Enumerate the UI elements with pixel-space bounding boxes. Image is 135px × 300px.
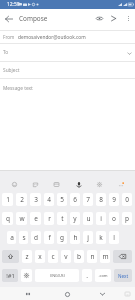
button[interactable]: g	[57, 231, 67, 244]
staticText: .com	[98, 273, 108, 278]
button[interactable]: 3	[30, 193, 41, 206]
button[interactable]: 1	[2, 193, 13, 206]
staticText: 1	[6, 195, 10, 204]
button[interactable]: t	[57, 212, 67, 225]
button[interactable]: n	[87, 250, 97, 263]
button[interactable]: j	[83, 231, 93, 244]
button[interactable]: i	[96, 212, 106, 225]
staticText: 8	[99, 195, 103, 204]
button[interactable]: 8	[96, 193, 106, 206]
button[interactable]: .com	[95, 269, 111, 282]
button[interactable]: 4	[44, 193, 54, 206]
button[interactable]: c	[48, 250, 58, 263]
button[interactable]: Stickers	[29, 178, 42, 191]
button[interactable]: x	[35, 250, 45, 263]
staticText: o	[112, 214, 116, 223]
staticText: From	[3, 34, 15, 40]
staticText: g	[60, 233, 64, 242]
button[interactable]: Voice input	[72, 178, 85, 191]
button[interactable]: Navigate up	[0, 10, 18, 27]
staticText: 0	[125, 195, 129, 204]
staticText: j	[87, 233, 89, 242]
button[interactable]: Message text	[0, 79, 135, 97]
button[interactable]: 9	[109, 193, 119, 206]
button[interactable]: Subject	[0, 62, 135, 78]
button[interactable]: e	[30, 212, 41, 225]
staticText: 4	[47, 195, 51, 204]
button[interactable]: Keyboard settings	[93, 178, 106, 191]
staticText: z	[25, 252, 29, 261]
staticText: x	[38, 252, 42, 261]
button[interactable]: Attach file	[92, 10, 106, 27]
button[interactable]: f	[44, 231, 54, 244]
staticText: Compose	[19, 14, 48, 23]
staticText: i	[100, 214, 102, 223]
staticText: u	[86, 214, 91, 223]
button[interactable]: Show CC and BCC	[123, 47, 135, 59]
staticText: Subject	[3, 67, 20, 74]
button[interactable]: To	[0, 44, 135, 61]
staticText: m	[102, 252, 109, 261]
button[interactable]: p	[122, 212, 132, 225]
staticText: 9	[112, 195, 116, 204]
staticText: n	[90, 252, 95, 261]
button[interactable]: 7	[83, 193, 93, 206]
button[interactable]: o	[109, 212, 119, 225]
button[interactable]: a	[7, 231, 16, 244]
button[interactable]: Emoji	[21, 269, 32, 282]
staticText: ENG(US)	[50, 273, 65, 278]
button[interactable]: Clipboard	[50, 178, 63, 191]
button[interactable]: Send	[106, 10, 121, 27]
button[interactable]: Emoji	[8, 178, 21, 191]
button[interactable]: u	[83, 212, 93, 225]
staticText: 6	[73, 195, 77, 204]
button[interactable]: ENG(US)	[35, 269, 79, 282]
staticText: 12:59	[7, 1, 20, 8]
staticText: k	[99, 233, 103, 242]
button[interactable]: 2	[16, 193, 27, 206]
button[interactable]: More options	[121, 10, 135, 27]
staticText: !#1	[6, 272, 15, 280]
button[interactable]: Backspace	[113, 250, 132, 263]
staticText: d	[34, 233, 38, 242]
button[interactable]: Shift	[2, 250, 19, 263]
staticText: 2	[20, 195, 24, 204]
staticText: s	[22, 233, 26, 242]
staticText: y	[73, 214, 77, 223]
staticText: h	[73, 233, 78, 242]
button[interactable]: Next	[114, 269, 132, 282]
button[interactable]: More keyboard options	[114, 178, 127, 191]
button[interactable]: !#1	[2, 269, 18, 282]
staticText: 5	[60, 195, 64, 204]
button[interactable]: r	[44, 212, 54, 225]
button[interactable]: h	[70, 231, 80, 244]
button[interactable]: b	[74, 250, 84, 263]
button[interactable]: z	[22, 250, 32, 263]
staticText: demosaivendor@outlook.com	[18, 34, 86, 41]
button[interactable]: 5	[57, 193, 67, 206]
button[interactable]: Back	[96, 288, 108, 300]
button[interactable]: q	[2, 212, 13, 225]
staticText: e	[34, 214, 38, 223]
staticText: v	[64, 252, 68, 261]
button[interactable]: d	[31, 231, 41, 244]
button[interactable]: 6	[70, 193, 80, 206]
staticText: Message text	[3, 85, 33, 92]
button[interactable]: s	[19, 231, 28, 244]
staticText: 7	[86, 195, 90, 204]
staticText: t	[61, 214, 64, 223]
button[interactable]: v	[61, 250, 71, 263]
staticText: f	[48, 233, 51, 242]
button[interactable]: w	[16, 212, 27, 225]
button[interactable]: Home	[61, 288, 73, 300]
button[interactable]: Recent apps	[22, 288, 34, 300]
button[interactable]: y	[70, 212, 80, 225]
staticText: l	[113, 233, 115, 242]
button[interactable]: 0	[122, 193, 132, 206]
button[interactable]: k	[96, 231, 106, 244]
button[interactable]: Change keyboard	[121, 288, 133, 300]
button[interactable]: l	[109, 231, 119, 244]
button[interactable]: From	[0, 31, 135, 43]
button[interactable]: .	[82, 269, 92, 282]
button[interactable]: m	[100, 250, 110, 263]
